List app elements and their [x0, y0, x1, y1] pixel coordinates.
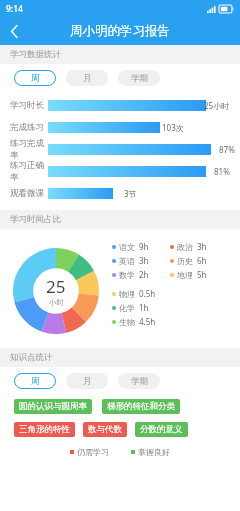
staticText: 周小明的学习报告 — [70, 23, 170, 39]
staticText: 0.5h — [139, 288, 156, 299]
staticText: 9h — [139, 241, 149, 252]
button[interactable]: Back — [0, 17, 28, 45]
staticText: 完成练习 — [10, 122, 48, 133]
staticText: 103次 — [162, 122, 184, 133]
staticText: 周 — [31, 73, 40, 84]
staticText: 练习正确率 — [10, 160, 48, 182]
staticText: 3节 — [124, 188, 137, 199]
staticText: 学习时间占比 — [10, 214, 61, 225]
staticText: 6h — [197, 255, 207, 266]
button[interactable]: 学期 — [118, 373, 160, 389]
staticText: 4.5h — [139, 316, 156, 327]
staticText: 仍需学习 — [77, 447, 109, 457]
staticText: 数与代数 — [88, 424, 122, 435]
staticText: 分数的意义 — [140, 424, 183, 435]
staticText: 掌握良好 — [138, 447, 170, 457]
staticText: 3h — [197, 241, 207, 252]
button[interactable]: 学期 — [118, 70, 160, 86]
staticText: 87% — [219, 144, 235, 155]
button[interactable]: 周 — [14, 70, 56, 86]
button[interactable]: 分数的意义 — [135, 422, 188, 437]
staticText: 1h — [139, 302, 149, 313]
button[interactable]: 月 — [66, 70, 108, 86]
staticText: 月 — [83, 376, 92, 387]
staticText: 周 — [31, 376, 40, 387]
staticText: 语文 — [119, 242, 135, 252]
staticText: 5h — [197, 269, 207, 280]
staticText: 81% — [214, 166, 230, 177]
button[interactable]: 三角形的特性 — [14, 422, 75, 437]
button[interactable]: 圆的认识与圆周率 — [14, 399, 92, 414]
staticText: 政治 — [177, 242, 193, 252]
button[interactable]: 梯形的特征和分类 — [102, 399, 180, 414]
staticText: 9:14 — [6, 3, 23, 15]
staticText: 数学 — [119, 270, 135, 280]
staticText: 练习完成率 — [10, 138, 48, 160]
staticText: 知识点统计 — [10, 352, 53, 363]
staticText: 25小时 — [204, 100, 230, 111]
staticText: 圆的认识与圆周率 — [19, 401, 87, 412]
staticText: 学期 — [131, 376, 148, 387]
staticText: 物理 — [119, 289, 135, 299]
staticText: 英语 — [119, 256, 135, 266]
staticText: 3h — [139, 255, 149, 266]
staticText: 2h — [139, 269, 149, 280]
staticText: 梯形的特征和分类 — [107, 401, 175, 412]
staticText: 历史 — [177, 256, 193, 266]
button[interactable]: 月 — [66, 373, 108, 389]
staticText: 25 — [46, 275, 66, 298]
staticText: 学习时长 — [10, 100, 48, 111]
staticText: 化学 — [119, 303, 135, 313]
button[interactable]: 数与代数 — [83, 422, 127, 437]
staticText: 地理 — [177, 270, 193, 280]
staticText: 生物 — [119, 317, 135, 327]
staticText: 小时 — [49, 298, 64, 307]
staticText: 学期 — [131, 73, 148, 84]
staticText: 月 — [83, 73, 92, 84]
button[interactable]: 周 — [14, 373, 56, 389]
staticText: 观看微课 — [10, 188, 48, 199]
staticText: 学习数据统计 — [10, 49, 61, 60]
staticText: 三角形的特性 — [19, 424, 70, 435]
